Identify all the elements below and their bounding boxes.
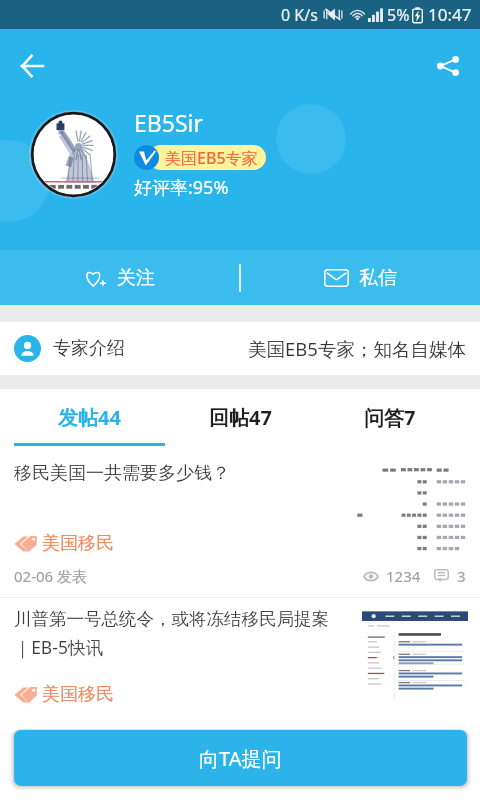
button[interactable]: 私信: [241, 250, 480, 305]
staticText: 10:47: [428, 3, 472, 26]
staticText: 专家介绍: [53, 337, 125, 360]
button[interactable]: 关注: [0, 250, 239, 305]
staticText: 好评率:95%: [134, 175, 229, 200]
button[interactable]: 专家介绍: [0, 322, 480, 375]
button[interactable]: 川普第一号总统令，或将冻结移民局提案｜EB-5快讯: [0, 598, 480, 730]
button[interactable]: 向TA提问: [14, 730, 467, 786]
staticText: 1234: [386, 566, 421, 586]
staticText: 问答7: [364, 404, 416, 431]
staticText: 回帖47: [209, 404, 272, 431]
staticText: 美国EB5专家: [165, 147, 258, 169]
staticText: 0 K/s: [281, 4, 318, 26]
staticText: 02-06 发表: [14, 566, 88, 586]
button[interactable]: 回帖47: [165, 389, 315, 446]
staticText: 美国移民: [42, 532, 114, 555]
staticText: 3: [457, 566, 466, 586]
staticText: 向TA提问: [199, 745, 282, 772]
button[interactable]: 发帖44: [14, 389, 165, 446]
staticText: EB5Sir: [134, 107, 203, 138]
staticText: 私信: [359, 266, 397, 290]
staticText: 美国移民: [42, 683, 114, 706]
button[interactable]: Share: [428, 46, 468, 86]
staticText: 川普第一号总统令，或将冻结移民局提案｜EB-5快讯: [14, 608, 341, 659]
staticText: 发帖44: [58, 404, 121, 431]
button[interactable]: Back: [11, 45, 53, 87]
button[interactable]: 问答7: [315, 389, 465, 446]
staticText: 关注: [117, 266, 155, 290]
staticText: 5%: [387, 4, 410, 26]
button[interactable]: 移民美国一共需要多少钱？: [0, 446, 480, 597]
staticText: 移民美国一共需要多少钱？: [14, 462, 230, 485]
staticText: 美国EB5专家；知名自媒体: [248, 336, 466, 361]
